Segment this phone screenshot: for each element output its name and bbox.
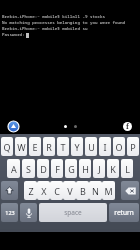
staticText: Y [74, 141, 80, 153]
staticText: f [126, 122, 129, 131]
button[interactable]: Dictation [20, 203, 37, 222]
button[interactable]: Backspace [121, 181, 139, 200]
button[interactable]: F [51, 159, 63, 178]
staticText: Password: [2, 32, 25, 38]
staticText: I [103, 141, 107, 153]
staticText: F [55, 163, 60, 175]
staticText: D [40, 163, 47, 175]
button[interactable]: D [37, 159, 49, 178]
staticText: S [26, 163, 31, 175]
button[interactable]: X [37, 181, 50, 200]
staticText: T [60, 141, 66, 153]
staticText: 123 [5, 209, 15, 216]
button[interactable]: H [79, 159, 91, 178]
button[interactable]: O [113, 137, 125, 156]
button[interactable]: Y [71, 137, 83, 156]
staticText: X [41, 185, 47, 197]
button[interactable]: New terminal [8, 121, 19, 132]
button[interactable]: K [107, 159, 119, 178]
button[interactable]: Info [123, 122, 132, 131]
staticText: W [17, 141, 26, 153]
staticText: U [88, 141, 95, 153]
staticText: V [67, 185, 73, 197]
button[interactable]: R [43, 137, 55, 156]
button[interactable]: space [39, 203, 107, 222]
button[interactable]: B [76, 181, 89, 200]
button[interactable]: Shift [1, 181, 18, 200]
staticText: L [125, 163, 130, 175]
button[interactable]: A [7, 159, 20, 178]
staticText: A [11, 163, 17, 175]
button[interactable]: J [93, 159, 105, 178]
button[interactable]: N [89, 181, 102, 200]
button[interactable]: P [127, 137, 139, 156]
button[interactable]: L [121, 159, 133, 178]
staticText: H [82, 163, 89, 175]
button[interactable]: S [22, 159, 35, 178]
button[interactable]: M [102, 181, 115, 200]
button[interactable]: Brekin-iPhone:~ mobile$ killall -9 stock… [0, 0, 140, 134]
staticText: Brekin-iPhone:~ mobile$ killall -9 stock… [2, 14, 106, 20]
staticText: Q [3, 141, 11, 153]
staticText: space [64, 208, 82, 217]
button[interactable]: Q [1, 137, 13, 156]
staticText: C [54, 185, 60, 197]
staticText: O [115, 141, 123, 153]
button[interactable]: E [29, 137, 41, 156]
button[interactable]: T [57, 137, 69, 156]
staticText: N [92, 185, 99, 197]
staticText: G [68, 163, 75, 175]
staticText: Brekin-iPhone:~ mobile$ mobiled su [2, 26, 88, 32]
button[interactable]: I [99, 137, 111, 156]
button[interactable]: V [63, 181, 76, 200]
staticText: K [110, 163, 116, 175]
button[interactable]: C [50, 181, 63, 200]
staticText: Z [28, 185, 34, 197]
staticText: No matching processes belonging to you w… [2, 20, 126, 26]
staticText: B [80, 185, 86, 197]
staticText: J [98, 163, 101, 175]
button[interactable]: W [15, 137, 27, 156]
staticText: R [46, 141, 52, 153]
staticText: M [104, 185, 113, 197]
staticText: P [130, 141, 136, 153]
button[interactable]: U [85, 137, 97, 156]
staticText: E [32, 141, 38, 153]
button[interactable]: Z [24, 181, 37, 200]
staticText: return [114, 208, 134, 217]
button[interactable]: return [109, 203, 139, 222]
button[interactable]: G [65, 159, 77, 178]
button[interactable]: 123 [1, 203, 18, 222]
